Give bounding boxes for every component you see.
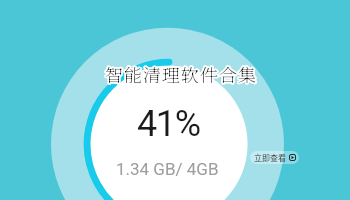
staticText: 立即查看 [254,152,286,164]
staticText: 智能清理软件合集 [105,61,257,87]
staticText: 1.34 GB/ 4GB [116,159,219,179]
button[interactable]: 立即查看 [250,151,299,164]
staticText: 41% [137,103,200,145]
staticText: 智能清理软件合集 [105,61,257,87]
